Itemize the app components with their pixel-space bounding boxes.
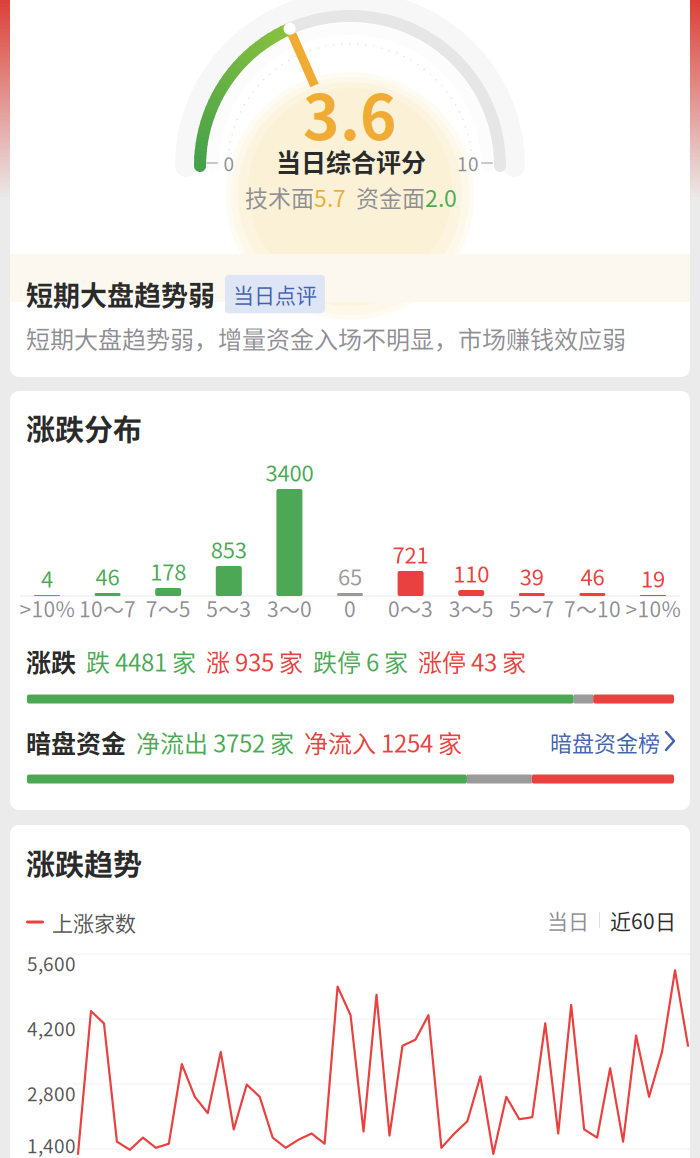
staticText: 3～0: [267, 593, 312, 623]
staticText: 5,600: [27, 949, 76, 977]
staticText: 跌停 6 家: [303, 644, 408, 678]
staticText: 2,800: [27, 1079, 76, 1107]
staticText: 技术面: [245, 180, 314, 214]
staticText: 跌 4481 家: [76, 644, 196, 678]
staticText: 2.0: [425, 180, 457, 214]
staticText: 涨 935 家: [196, 644, 303, 678]
staticText: 当日点评: [233, 279, 317, 309]
staticText: 0: [223, 149, 234, 177]
staticText: 净流出 3752 家: [126, 725, 294, 759]
staticText: 19: [641, 562, 665, 594]
staticText: 上涨家数: [52, 907, 136, 937]
staticText: 资金面: [346, 180, 425, 214]
staticText: 1,400: [27, 1131, 76, 1158]
staticText: >10%: [625, 593, 680, 623]
staticText: 853: [211, 533, 247, 565]
staticText: 10～7: [79, 593, 136, 623]
staticText: 178: [150, 555, 186, 587]
staticText: 短期大盘趋势弱: [26, 274, 215, 314]
staticText: 涨跌趋势: [26, 842, 142, 884]
staticText: 当日综合评分: [276, 143, 426, 179]
staticText: 近60日: [610, 905, 676, 935]
staticText: 65: [338, 560, 362, 592]
staticText: 涨跌: [26, 643, 76, 679]
staticText: 7～10: [564, 593, 621, 623]
staticText: 涨跌分布: [26, 407, 142, 449]
staticText: 3400: [265, 456, 313, 488]
staticText: 3.6: [303, 68, 397, 158]
staticText: 46: [96, 560, 120, 592]
staticText: 5～7: [509, 593, 554, 623]
staticText: 暗盘资金榜: [550, 726, 660, 758]
staticText: 39: [520, 560, 544, 592]
staticText: 短期大盘趋势弱，增量资金入场不明显，市场赚钱效应弱: [26, 321, 626, 355]
staticText: 46: [580, 560, 604, 592]
staticText: 110: [453, 557, 489, 589]
staticText: 0: [344, 593, 356, 623]
staticText: 5～3: [206, 593, 251, 623]
staticText: 当日: [547, 905, 589, 935]
staticText: 4,200: [27, 1014, 76, 1042]
staticText: 净流入 1254 家: [294, 725, 462, 759]
staticText: 涨停 43 家: [408, 644, 526, 678]
staticText: 暗盘资金: [26, 724, 126, 760]
staticText: >10%: [19, 593, 74, 623]
staticText: 0～3: [388, 593, 433, 623]
staticText: 4: [41, 562, 53, 594]
staticText: 5.7: [314, 180, 346, 214]
staticText: 10: [457, 149, 479, 177]
staticText: 721: [393, 538, 429, 570]
staticText: 7～5: [146, 593, 191, 623]
staticText: 3～5: [449, 593, 494, 623]
